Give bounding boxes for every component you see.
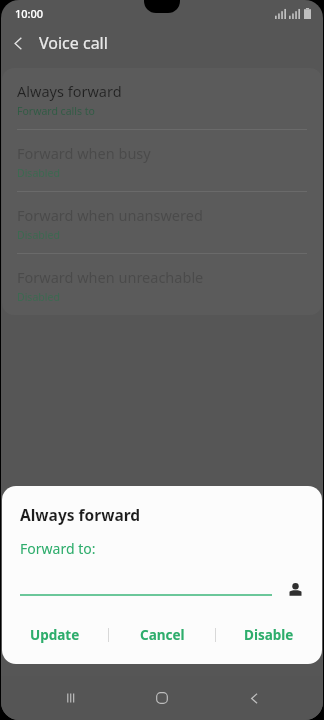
staticText: Always forward (17, 81, 122, 101)
button[interactable]: Back (1, 26, 35, 60)
staticText: Forward calls to (17, 104, 95, 118)
button[interactable]: Recent apps (49, 676, 93, 720)
staticText: Disabled (17, 290, 60, 304)
button[interactable]: Forward when unreachable (2, 254, 322, 315)
button[interactable]: Home (140, 676, 184, 720)
button[interactable]: Choose contact (282, 576, 308, 602)
staticText: Forward when unanswered (17, 205, 203, 225)
button[interactable]: Update (2, 618, 108, 652)
button[interactable]: Disable (216, 618, 322, 652)
button[interactable]: Always forward (2, 68, 322, 129)
staticText: Disabled (17, 228, 60, 242)
staticText: Disabled (17, 166, 60, 180)
staticText: Forward when unreachable (17, 267, 204, 287)
button[interactable] (20, 582, 272, 596)
staticText: Forward when busy (17, 143, 151, 163)
staticText: Always forward (20, 504, 141, 525)
staticText: Update (30, 626, 80, 644)
staticText: Disable (244, 626, 294, 644)
button[interactable]: Cancel (109, 618, 215, 652)
staticText: Forward to: (20, 539, 96, 558)
button[interactable]: Back (232, 676, 276, 720)
button[interactable]: Forward when unanswered (2, 192, 322, 253)
staticText: Voice call (39, 32, 108, 54)
staticText: Cancel (140, 626, 185, 644)
staticText: 10:00 (15, 6, 44, 21)
